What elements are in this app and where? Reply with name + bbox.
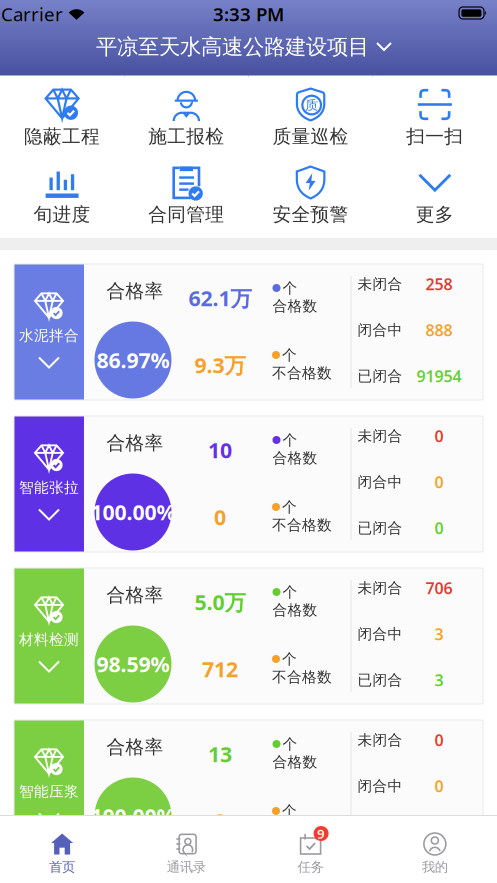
staticText: 不合格数	[272, 668, 332, 686]
staticText: 未闭合	[357, 275, 402, 293]
button[interactable]: 合同管理	[124, 153, 248, 231]
staticText: 706	[425, 577, 452, 599]
staticText: 个	[282, 346, 297, 364]
staticText: 98.59%	[96, 650, 169, 678]
staticText: 0	[214, 807, 226, 835]
staticText: 个	[282, 735, 297, 753]
button[interactable]: 隐蔽工程	[0, 75, 124, 153]
button[interactable]: 安全预警	[248, 153, 373, 231]
staticText: 智能张拉	[19, 478, 79, 496]
button[interactable]: 旬进度	[0, 153, 124, 231]
staticText: 合格数	[272, 753, 317, 771]
staticText: 10	[208, 436, 232, 464]
staticText: 隐蔽工程	[24, 125, 100, 148]
staticText: 888	[425, 319, 452, 341]
button[interactable]: 智能压浆	[14, 720, 483, 856]
staticText: 0	[434, 729, 443, 751]
staticText: 0	[434, 517, 443, 539]
staticText: 质	[306, 98, 318, 112]
staticText: 施工报检	[148, 125, 224, 148]
staticText: 合格率	[106, 431, 163, 454]
staticText: 0	[214, 503, 226, 531]
staticText: 已闭合	[357, 671, 402, 689]
staticText: 我的	[422, 859, 448, 875]
staticText: Carrier	[1, 2, 63, 26]
staticText: 9	[317, 825, 325, 842]
button[interactable]: 材料检测	[14, 568, 483, 704]
staticText: 闭合中	[357, 473, 402, 491]
staticText: 0	[434, 471, 443, 493]
staticText: 合格率	[106, 735, 163, 758]
staticText: 合格率	[106, 279, 163, 302]
button[interactable]: 水泥拌合	[14, 264, 483, 400]
staticText: 未闭合	[357, 579, 402, 597]
staticText: 更多	[416, 203, 454, 226]
staticText: 个	[282, 583, 297, 601]
staticText: 个	[282, 279, 297, 297]
staticText: 100.00%	[90, 802, 175, 830]
staticText: 个	[282, 431, 297, 449]
button[interactable]: 9	[248, 816, 373, 883]
staticText: 合格率	[106, 583, 163, 606]
staticText: 0	[434, 821, 443, 843]
button[interactable]: 平凉至天水高速公路建设项目	[96, 34, 392, 60]
button[interactable]: 更多	[373, 153, 497, 231]
staticText: 3	[434, 623, 443, 645]
staticText: 平凉至天水高速公路建设项目	[96, 34, 369, 60]
button[interactable]: 首页	[0, 816, 124, 883]
staticText: 合格数	[272, 449, 317, 467]
staticText: 闭合中	[357, 777, 402, 795]
button[interactable]: 通讯录	[124, 816, 248, 883]
staticText: 智能压浆	[19, 782, 79, 800]
staticText: 3	[434, 669, 443, 691]
staticText: 100.00%	[90, 498, 175, 526]
staticText: 已闭合	[357, 367, 402, 385]
staticText: 个	[282, 802, 297, 820]
staticText: 62.1万	[188, 284, 251, 312]
button[interactable]: 扫一扫	[373, 75, 497, 153]
staticText: 不合格数	[272, 364, 332, 382]
button[interactable]: 质	[248, 75, 373, 153]
button[interactable]: 智能张拉	[14, 416, 483, 552]
staticText: 材料检测	[19, 630, 79, 648]
staticText: 合格数	[272, 297, 317, 315]
staticText: 0	[434, 775, 443, 797]
staticText: 3:33 PM	[213, 2, 284, 26]
staticText: 个	[282, 650, 297, 668]
staticText: 712	[202, 655, 238, 683]
staticText: 91954	[416, 365, 461, 387]
staticText: 不合格数	[272, 516, 332, 534]
staticText: 未闭合	[357, 427, 402, 445]
staticText: 9.3万	[194, 351, 245, 379]
staticText: 闭合中	[357, 321, 402, 339]
staticText: 86.97%	[96, 346, 169, 374]
staticText: 不合格数	[272, 820, 332, 838]
staticText: 安全预警	[273, 203, 349, 226]
staticText: 0	[434, 425, 443, 447]
staticText: 已闭合	[357, 519, 402, 537]
staticText: 扫一扫	[406, 125, 463, 148]
staticText: 水泥拌合	[19, 326, 79, 344]
staticText: 合同管理	[148, 203, 224, 226]
staticText: 未闭合	[357, 731, 402, 749]
button[interactable]: 我的	[373, 816, 497, 883]
staticText: 通讯录	[167, 859, 206, 875]
staticText: 首页	[49, 859, 75, 875]
staticText: 5.0万	[194, 588, 245, 616]
staticText: 旬进度	[34, 203, 91, 226]
staticText: 合格数	[272, 601, 317, 619]
staticText: 任务	[298, 859, 324, 875]
staticText: 质量巡检	[273, 125, 349, 148]
staticText: 闭合中	[357, 625, 402, 643]
staticText: 13	[208, 740, 232, 768]
button[interactable]: 施工报检	[124, 75, 248, 153]
staticText: 个	[282, 498, 297, 516]
staticText: 258	[425, 273, 452, 295]
